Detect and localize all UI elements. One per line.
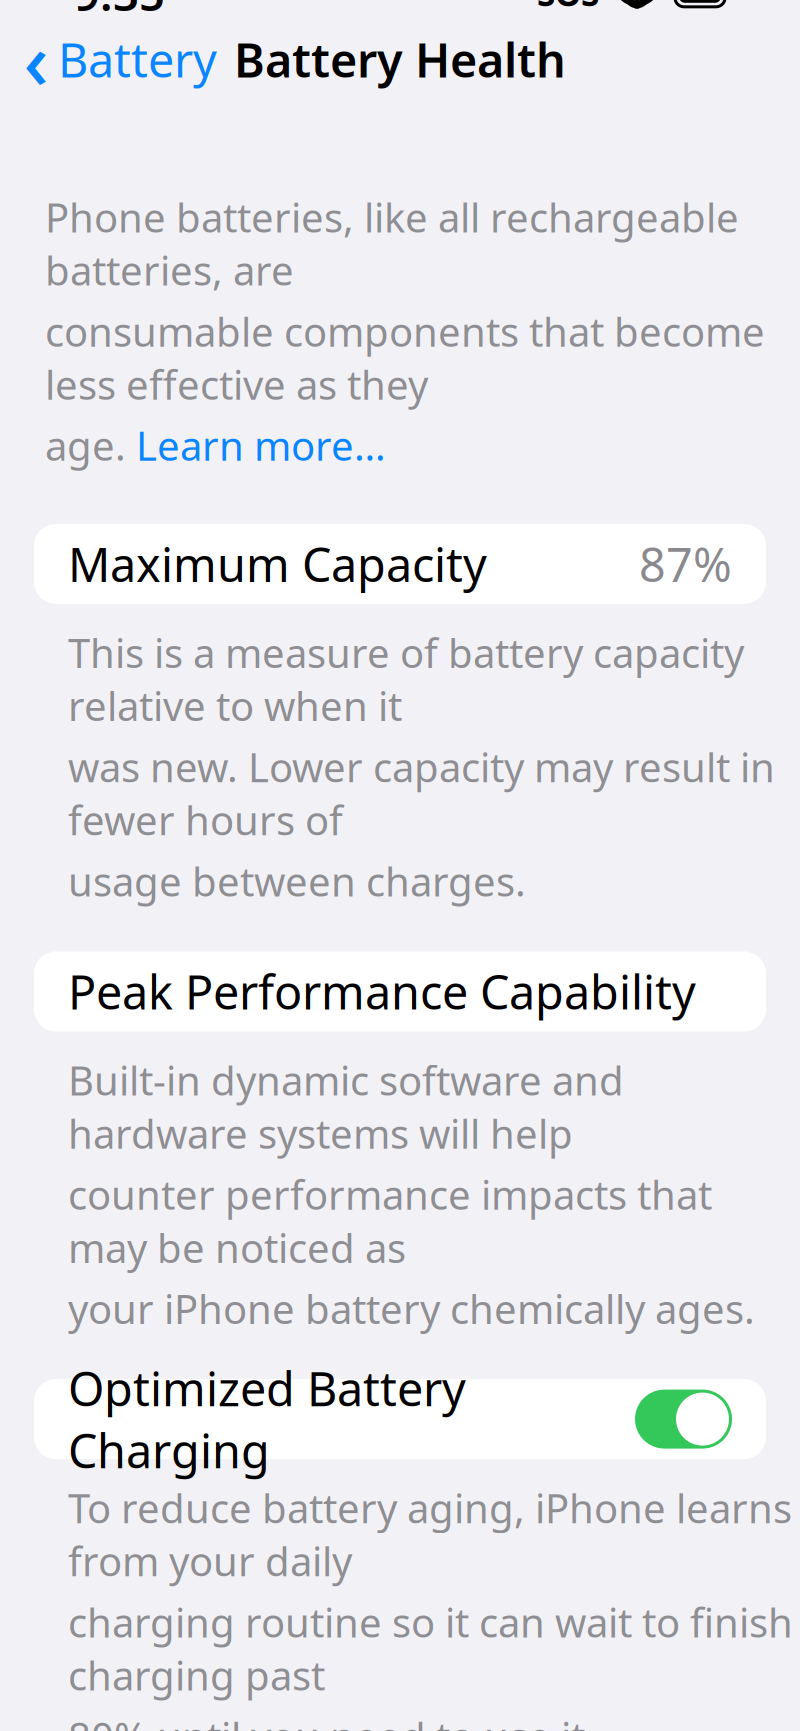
staticText: Battery Health bbox=[234, 28, 566, 90]
staticText: Optimized Battery Charging bbox=[68, 1357, 466, 1481]
staticText: Built-in dynamic software and hardware s… bbox=[68, 1053, 624, 1160]
staticText: 87% bbox=[639, 533, 732, 595]
staticText: SOS bbox=[537, 0, 599, 15]
button[interactable]: ‹ bbox=[18, 16, 223, 102]
staticText: Phone batteries, like all rechargeable b… bbox=[45, 190, 739, 296]
staticText: Peak Performance Capability bbox=[68, 960, 696, 1022]
staticText: Learn more… bbox=[136, 419, 386, 472]
button[interactable]: Peak Performance Capability bbox=[0, 951, 800, 1031]
staticText: 9:35 bbox=[74, 0, 165, 23]
staticText: 80% until you need to use it. bbox=[68, 1710, 596, 1731]
staticText: consumable components that become less e… bbox=[45, 305, 765, 411]
staticText: age. bbox=[45, 419, 136, 472]
button[interactable]: Learn more… bbox=[136, 419, 386, 472]
staticText: your iPhone battery chemically ages. bbox=[68, 1282, 755, 1335]
staticText: This is a measure of battery capacity re… bbox=[68, 626, 744, 732]
staticText: Maximum Capacity bbox=[68, 533, 487, 595]
staticText: usage between charges. bbox=[68, 854, 526, 907]
staticText: charging routine so it can wait to finis… bbox=[68, 1595, 793, 1701]
staticText: ‹ bbox=[23, 8, 48, 111]
staticText: counter performance impacts that may be … bbox=[68, 1168, 712, 1274]
staticText: Battery bbox=[58, 28, 217, 90]
staticText: was new. Lower capacity may result in fe… bbox=[68, 740, 775, 846]
button[interactable]: Optimized Battery Charging, on bbox=[635, 1390, 732, 1449]
staticText: To reduce battery aging, iPhone learns f… bbox=[68, 1481, 792, 1587]
